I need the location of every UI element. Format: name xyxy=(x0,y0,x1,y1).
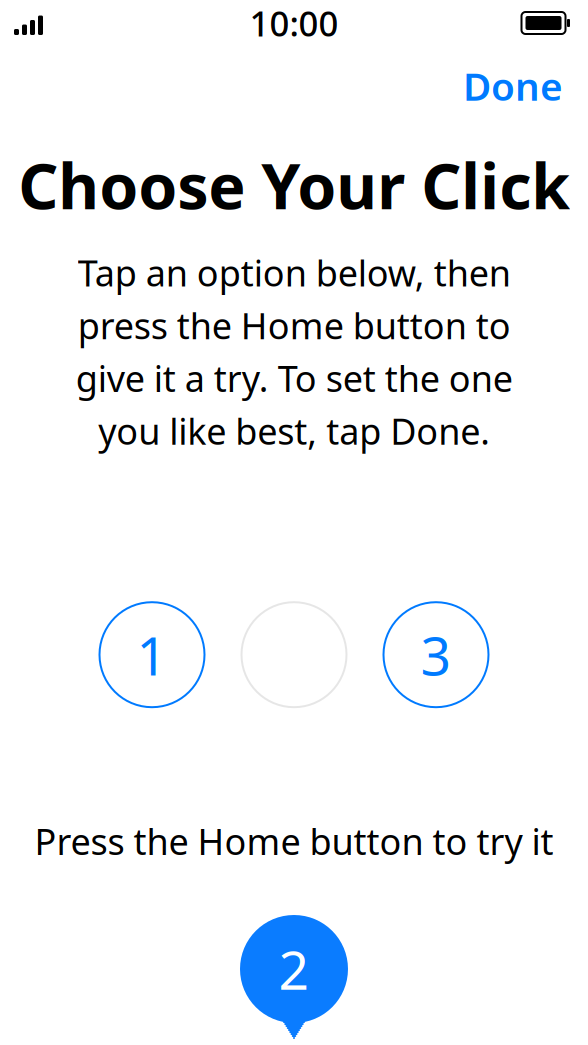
button[interactable]: Done xyxy=(451,54,575,117)
staticText: 2 xyxy=(278,934,309,1004)
staticText: Choose Your Click xyxy=(18,143,570,226)
staticText: 10:00 xyxy=(249,0,338,46)
staticText: 1 xyxy=(136,619,167,690)
button[interactable]: Click strength 1 xyxy=(99,602,204,707)
staticText: 3 xyxy=(420,619,451,690)
button[interactable]: Click strength 3 xyxy=(383,602,488,707)
button[interactable]: Current click strength xyxy=(241,602,346,707)
staticText: Tap an option below, then press the Home… xyxy=(75,249,512,455)
staticText: Press the Home button to try it xyxy=(34,817,553,865)
staticText: Done xyxy=(463,60,563,111)
